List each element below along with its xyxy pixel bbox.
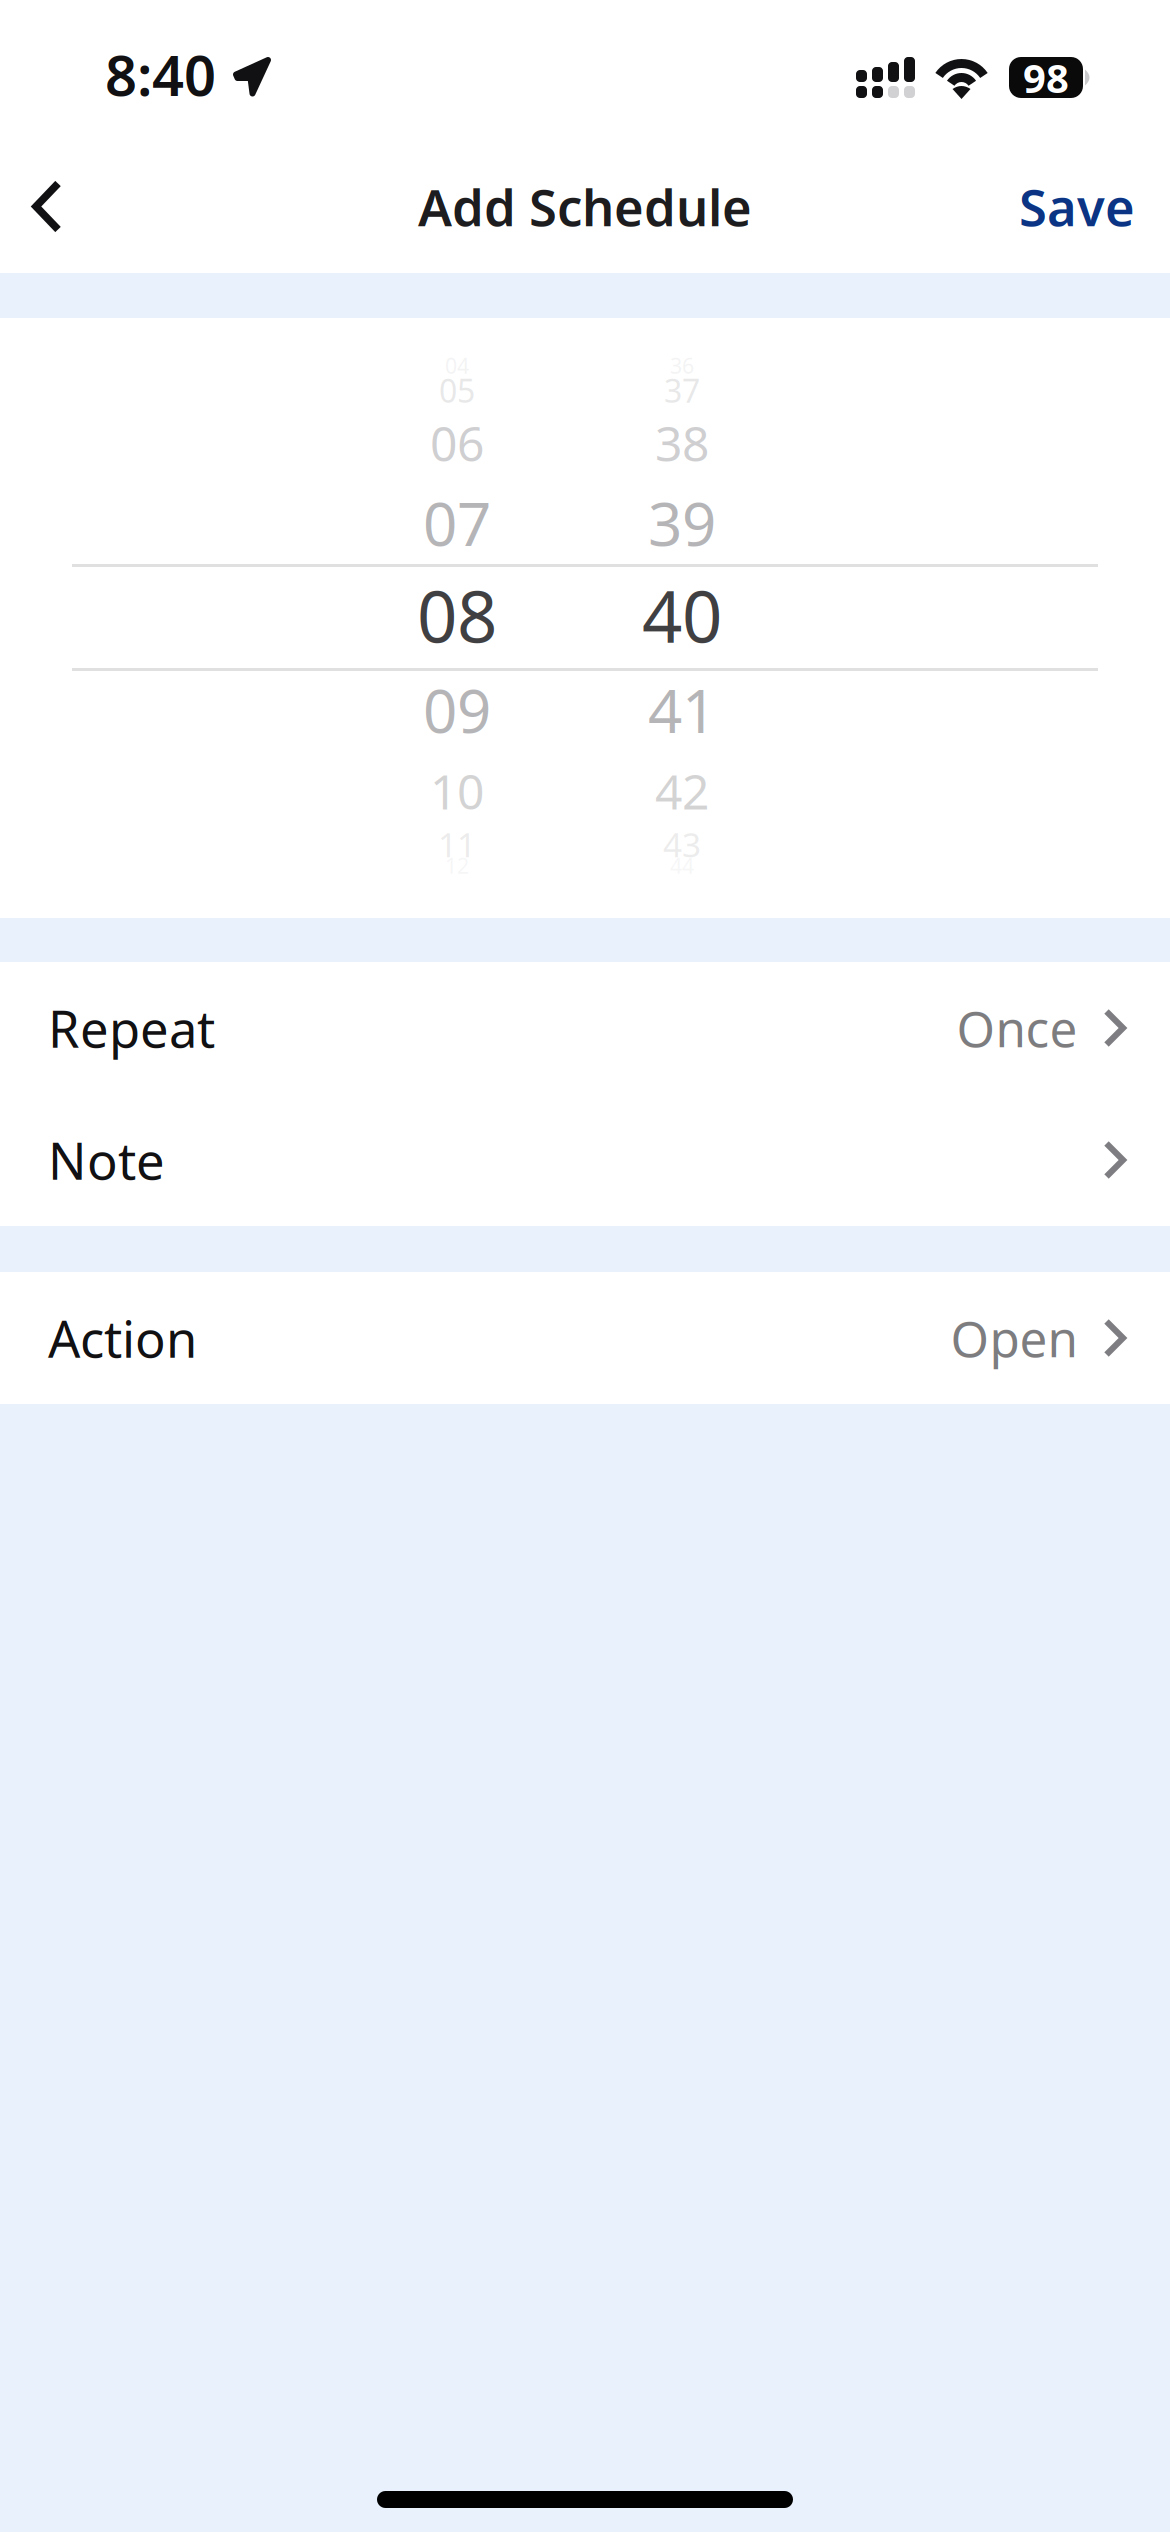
staticText: 10 [430, 759, 484, 823]
staticText: 05 [439, 369, 475, 411]
staticText: 06 [430, 411, 484, 475]
button[interactable]: Repeat [0, 962, 1170, 1094]
button[interactable]: Minute [587, 318, 777, 918]
staticText: 38 [655, 411, 709, 475]
button[interactable]: Back [0, 140, 103, 273]
staticText: Note [48, 1126, 165, 1194]
staticText: Open [950, 1305, 1077, 1371]
staticText: Action [48, 1304, 197, 1372]
staticText: 37 [664, 369, 700, 411]
staticText: 40 [642, 568, 722, 662]
staticText: 42 [655, 759, 709, 823]
staticText: 36 [670, 351, 694, 380]
staticText: 07 [423, 483, 491, 562]
staticText: Save [1019, 173, 1135, 240]
staticText: 41 [648, 670, 716, 749]
staticText: Add Schedule [418, 173, 752, 240]
staticText: Repeat [48, 994, 215, 1062]
button[interactable]: Action [0, 1272, 1170, 1404]
staticText: 04 [445, 351, 469, 380]
staticText: 09 [423, 670, 491, 749]
staticText: 39 [648, 483, 716, 562]
button[interactable]: Save [980, 140, 1170, 273]
staticText: 12 [445, 851, 469, 880]
button[interactable]: Note [0, 1094, 1170, 1226]
staticText: Once [956, 995, 1077, 1061]
staticText: 44 [670, 851, 694, 880]
staticText: 11 [438, 822, 476, 866]
staticText: 43 [663, 822, 701, 866]
staticText: 08 [417, 568, 497, 662]
staticText: 98 [1023, 51, 1069, 104]
button[interactable]: Hour [362, 318, 552, 918]
staticText: 8:40 [105, 37, 216, 111]
